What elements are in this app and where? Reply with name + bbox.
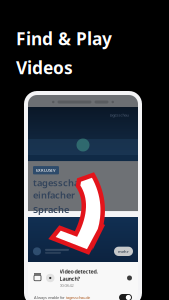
staticText: EXKLUSIV — [36, 168, 56, 173]
staticText: mehr — [118, 249, 129, 254]
staticText: Video detected. Launch? — [59, 268, 97, 282]
staticText: tagesschau in einfacher — [33, 176, 96, 201]
staticText: Find & Play — [16, 27, 112, 50]
staticText: tagesschau.de — [66, 295, 90, 300]
staticText: tagesschau — [109, 112, 128, 118]
staticText: Always enable for — [34, 295, 66, 300]
staticText: 00:08:42 — [59, 283, 73, 288]
staticText: Sprache — [33, 203, 69, 216]
staticText: Videos — [16, 56, 73, 79]
